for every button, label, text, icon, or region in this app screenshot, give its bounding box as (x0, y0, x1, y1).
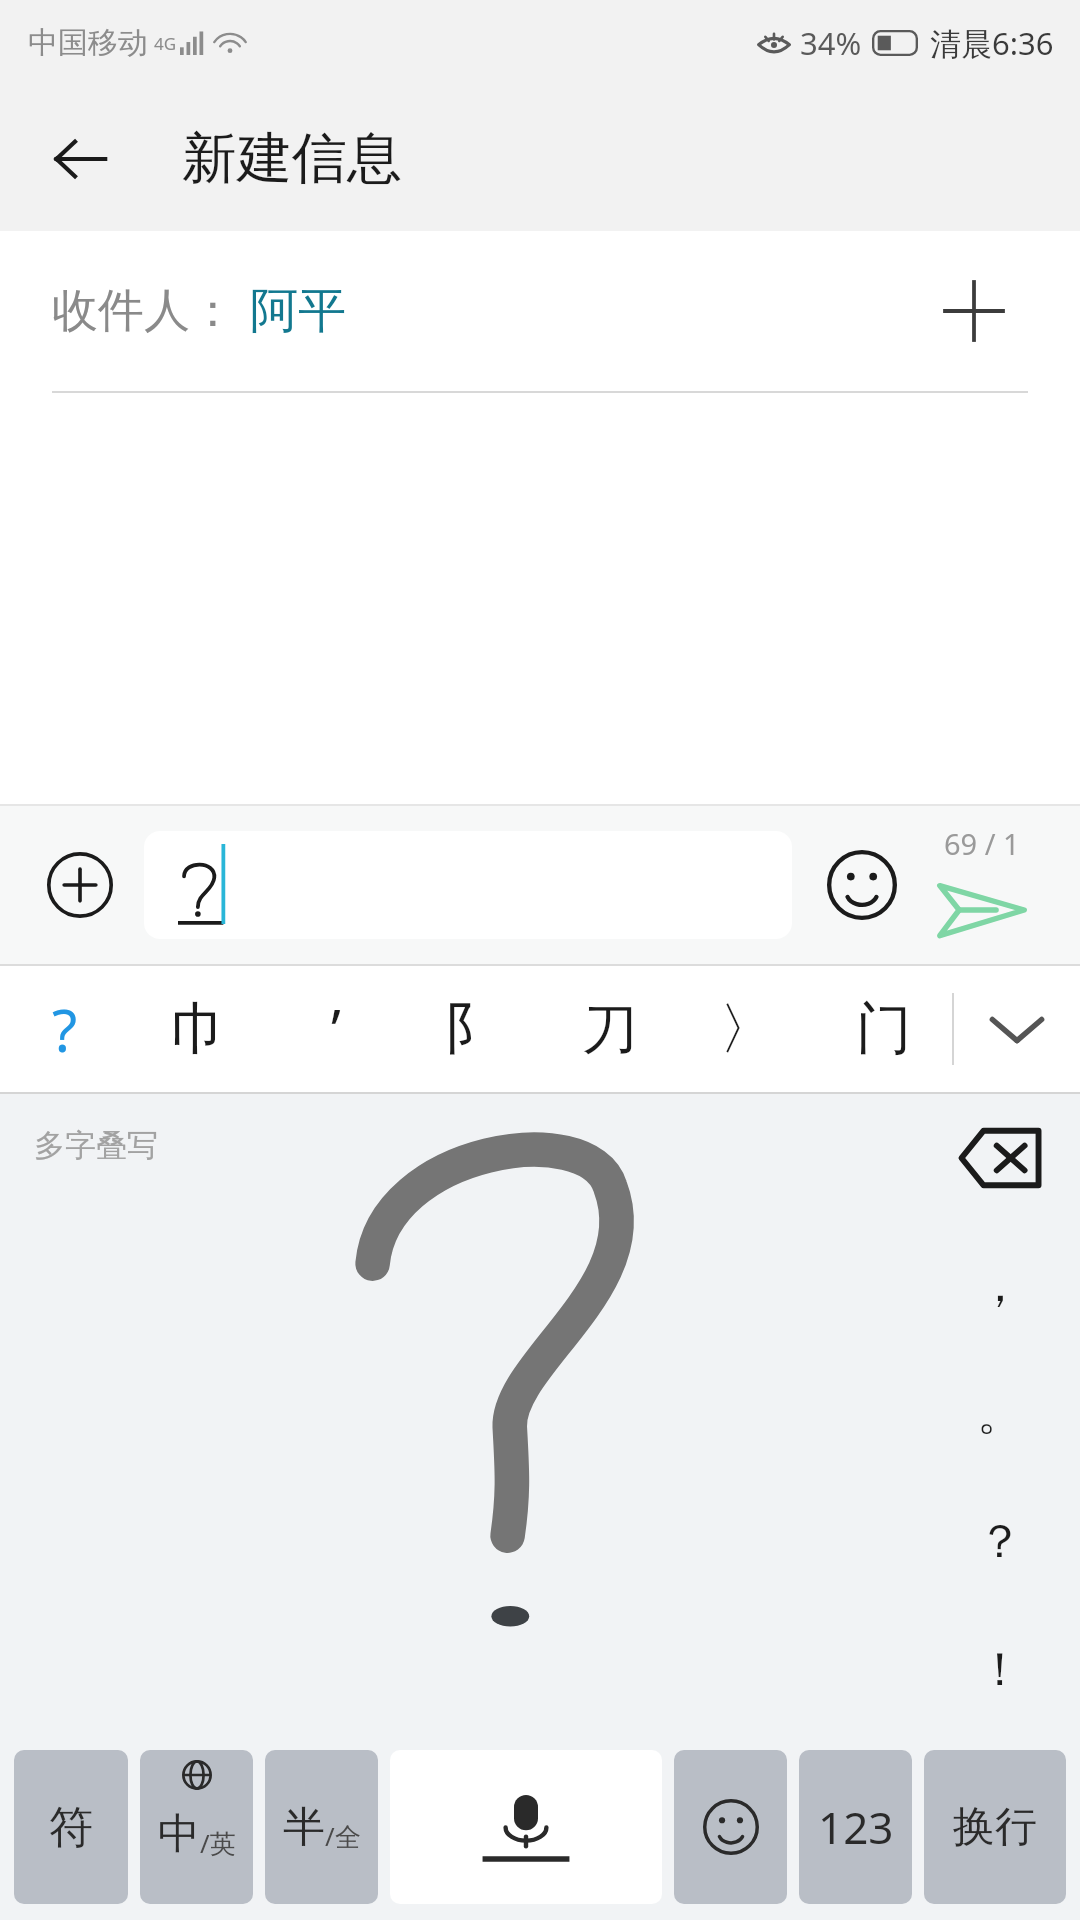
button[interactable]: 巾 (130, 966, 267, 1092)
button[interactable]: 。 (920, 1350, 1080, 1478)
button[interactable]: 半 (265, 1750, 378, 1904)
button[interactable]: ， (920, 1222, 1080, 1350)
staticText: /全 (325, 1818, 361, 1854)
staticText: ? (52, 990, 78, 1069)
staticText: 换行 (953, 1801, 1037, 1854)
button[interactable]: ！ (920, 1606, 1080, 1734)
button[interactable]: Send (914, 806, 1050, 964)
button[interactable]: 〉 (678, 966, 815, 1092)
button[interactable]: ’ (267, 966, 404, 1092)
button[interactable]: 门 (815, 966, 952, 1092)
staticText: ！ (977, 1641, 1023, 1699)
staticText: 门 (856, 994, 912, 1065)
button[interactable]: Space, voice input (390, 1750, 662, 1904)
staticText: ’ (331, 991, 341, 1067)
button[interactable]: Add attachment (30, 835, 130, 935)
staticText: /英 (200, 1825, 236, 1861)
staticText: 巾 (171, 994, 227, 1065)
button[interactable]: More candidates (954, 966, 1080, 1092)
staticText: 中国移动 (28, 24, 148, 62)
staticText: 收件人： (52, 282, 236, 340)
staticText: 。 (977, 1385, 1023, 1443)
button[interactable] (674, 1750, 787, 1904)
staticText: 4G (154, 32, 177, 55)
button[interactable]: Back (34, 113, 126, 205)
button[interactable]: 阿平 (250, 281, 346, 341)
button[interactable]: 阝 (404, 966, 541, 1092)
staticText: 阝 (445, 994, 501, 1065)
staticText: 新建信息 (182, 124, 402, 193)
button[interactable]: 中 (140, 1750, 253, 1904)
staticText: 多字叠写 (34, 1126, 158, 1165)
button[interactable]: ？ (920, 1478, 1080, 1606)
staticText: ， (977, 1257, 1023, 1315)
staticText: 69 / 1 (944, 824, 1020, 863)
button[interactable]: 123 (799, 1750, 912, 1904)
button[interactable]: ? (0, 966, 130, 1092)
button[interactable]: Add contact (928, 265, 1020, 357)
staticText: ？ (977, 1513, 1023, 1571)
staticText: 123 (818, 1797, 894, 1857)
button[interactable] (144, 831, 792, 939)
staticText: 清晨6:36 (930, 22, 1054, 64)
button[interactable]: Emoji (810, 833, 914, 937)
button[interactable]: 换行 (924, 1750, 1066, 1904)
staticText: 34% (800, 22, 862, 64)
button[interactable]: Backspace (920, 1094, 1080, 1222)
staticText: 刀 (582, 994, 638, 1065)
button[interactable]: 刀 (541, 966, 678, 1092)
staticText: 半 (283, 1801, 325, 1854)
staticText: 中 (158, 1808, 200, 1861)
button[interactable]: 符 (14, 1750, 128, 1904)
staticText: 符 (49, 1800, 93, 1855)
staticText: 〉 (719, 994, 775, 1065)
